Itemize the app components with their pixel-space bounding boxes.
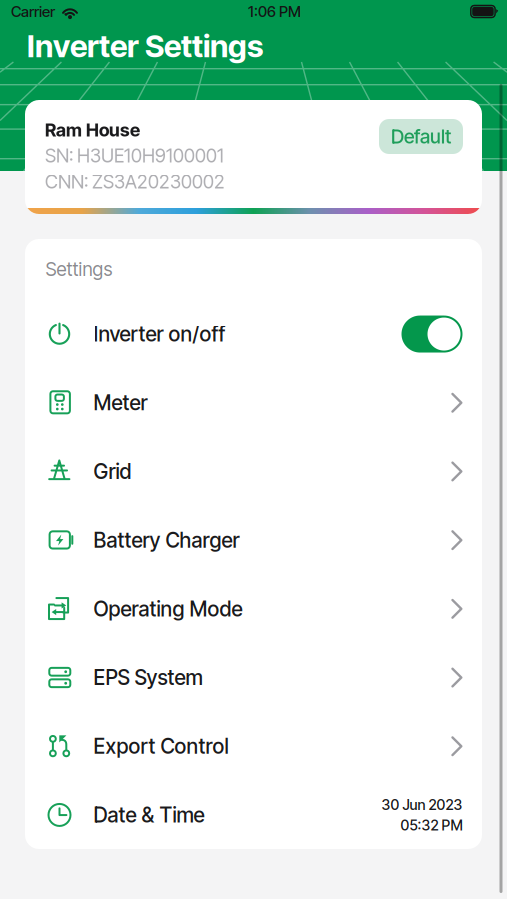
staticText: Grid xyxy=(93,459,131,484)
button[interactable]: EPS System xyxy=(25,643,482,712)
staticText: Carrier xyxy=(11,2,55,20)
staticText: Meter xyxy=(93,390,147,415)
staticText: Ram House xyxy=(45,119,140,141)
staticText: Settings xyxy=(45,258,112,280)
staticText: 1:06 PM xyxy=(248,2,301,20)
button[interactable]: Grid xyxy=(25,437,482,506)
staticText: Export Control xyxy=(93,734,228,759)
button[interactable]: Operating Mode xyxy=(25,574,482,643)
button[interactable]: Default xyxy=(379,119,463,154)
staticText: Date & Time xyxy=(93,802,204,827)
staticText: Battery Charger xyxy=(93,528,239,553)
staticText: Default xyxy=(391,125,451,148)
button[interactable]: Export Control xyxy=(25,712,482,781)
staticText: CNN: ZS3A20230002 xyxy=(45,170,225,193)
staticText: Inverter on/off xyxy=(93,321,225,346)
staticText: EPS System xyxy=(93,665,202,690)
button[interactable]: Date & Time xyxy=(25,781,482,849)
staticText: 30 Jun 2023 xyxy=(381,796,462,813)
staticText: Inverter Settings xyxy=(27,27,263,65)
button[interactable]: Battery Charger xyxy=(25,506,482,574)
button[interactable]: Inverter on/off xyxy=(25,300,482,368)
staticText: SN: H3UE10H9100001 xyxy=(45,144,224,167)
staticText: Operating Mode xyxy=(93,596,242,621)
button[interactable]: Meter xyxy=(25,368,482,437)
button[interactable]: Inverter on/off xyxy=(401,316,462,353)
staticText: 05:32 PM xyxy=(400,816,462,834)
